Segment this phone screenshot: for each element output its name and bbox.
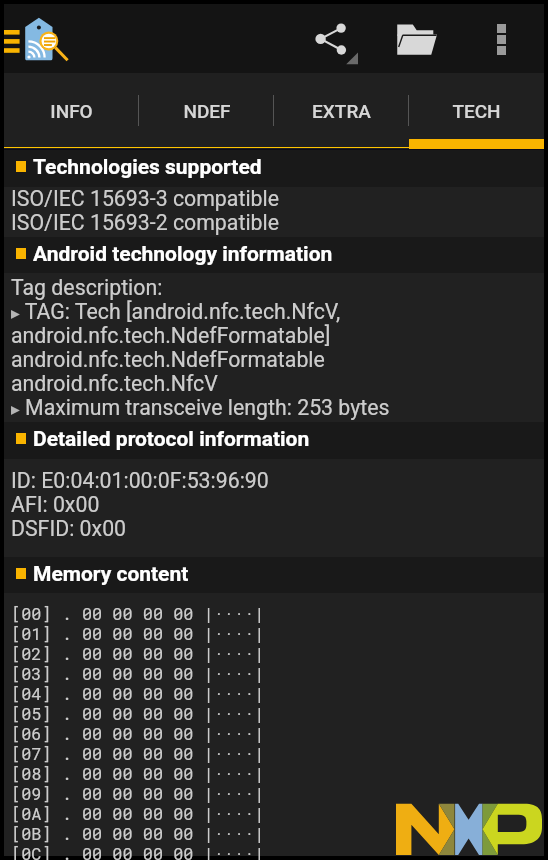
staticText: TECH bbox=[452, 100, 501, 122]
staticText: [0B] . 00 00 00 00 |····| bbox=[11, 824, 265, 844]
staticText: android.nfc.tech.NdefFormatable] bbox=[11, 324, 331, 348]
staticText: AFI: 0x00 bbox=[11, 493, 100, 517]
button[interactable]: Share bbox=[298, 4, 380, 73]
staticText: [08] . 00 00 00 00 |····| bbox=[11, 764, 265, 784]
staticText: [02] . 00 00 00 00 |····| bbox=[11, 644, 265, 664]
button[interactable]: Technologies supported bbox=[4, 150, 544, 187]
staticText: Tag description: bbox=[11, 276, 163, 300]
staticText: INFO bbox=[50, 100, 93, 122]
button[interactable]: TECH bbox=[409, 73, 544, 150]
staticText: EXTRA bbox=[312, 100, 371, 122]
staticText: [00] . 00 00 00 00 |····| bbox=[11, 604, 265, 624]
staticText: ▸ Maximum transceive length: 253 bytes bbox=[11, 396, 390, 420]
button[interactable]: Open file bbox=[380, 4, 460, 73]
button[interactable]: INFO bbox=[4, 73, 139, 150]
staticText: [06] . 00 00 00 00 |····| bbox=[11, 724, 265, 744]
staticText: ▸ TAG: Tech [android.nfc.tech.NfcV, bbox=[11, 300, 341, 324]
staticText: [01] . 00 00 00 00 |····| bbox=[11, 624, 265, 644]
staticText: android.nfc.tech.NfcV bbox=[11, 372, 218, 396]
staticText: ISO/IEC 15693-2 compatible bbox=[11, 211, 279, 235]
staticText: Technologies supported bbox=[33, 155, 262, 180]
staticText: [09] . 00 00 00 00 |····| bbox=[11, 784, 265, 804]
button[interactable]: Detailed protocol information bbox=[4, 422, 544, 459]
staticText: [07] . 00 00 00 00 |····| bbox=[11, 744, 265, 764]
button[interactable]: NDEF bbox=[139, 73, 274, 150]
button[interactable]: Navigation menu bbox=[4, 4, 76, 73]
staticText: [05] . 00 00 00 00 |····| bbox=[11, 704, 265, 724]
staticText: ID: E0:04:01:00:0F:53:96:90 bbox=[11, 469, 269, 493]
staticText: Memory content bbox=[33, 562, 189, 587]
staticText: Detailed protocol information bbox=[33, 427, 310, 452]
staticText: android.nfc.tech.NdefFormatable bbox=[11, 348, 325, 372]
staticText: Android technology information bbox=[33, 242, 333, 267]
staticText: [0C] . 00 00 00 00 |····| bbox=[11, 844, 265, 860]
staticText: NDEF bbox=[183, 100, 231, 122]
staticText: ISO/IEC 15693-3 compatible bbox=[11, 187, 279, 211]
staticText: [03] . 00 00 00 00 |····| bbox=[11, 664, 265, 684]
button[interactable]: Android technology information bbox=[4, 237, 544, 273]
staticText: [04] . 00 00 00 00 |····| bbox=[11, 684, 265, 704]
button[interactable]: EXTRA bbox=[274, 73, 409, 150]
staticText: DSFID: 0x00 bbox=[11, 517, 127, 541]
staticText: [0A] . 00 00 00 00 |····| bbox=[11, 804, 265, 824]
button[interactable]: More options bbox=[460, 4, 544, 73]
button[interactable]: Memory content bbox=[4, 557, 544, 593]
